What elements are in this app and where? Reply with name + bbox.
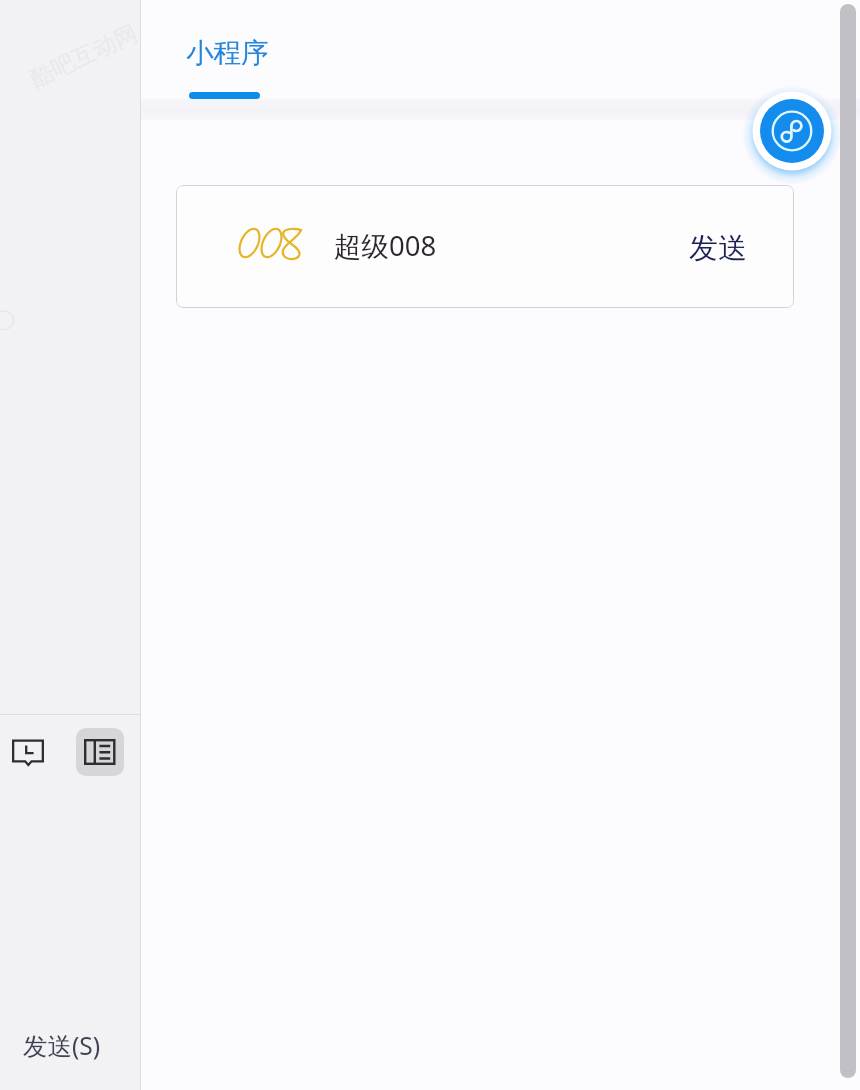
button[interactable]: 小程序 [186, 36, 269, 71]
staticText: 发送 [689, 230, 747, 267]
staticText: 发送(S) [23, 1029, 101, 1062]
button[interactable]: 发送(S) [23, 1029, 101, 1062]
button[interactable]: 超级008 [176, 185, 794, 308]
button[interactable]: 发送 [689, 230, 747, 267]
staticText: 小程序 [186, 36, 269, 71]
button[interactable]: Mini programs [76, 728, 124, 776]
button[interactable]: Mini Program [742, 81, 842, 181]
staticText: 超级008 [334, 227, 437, 265]
button[interactable]: Recent chats [4, 728, 52, 776]
staticText: 酷吧互动网 [26, 19, 142, 94]
